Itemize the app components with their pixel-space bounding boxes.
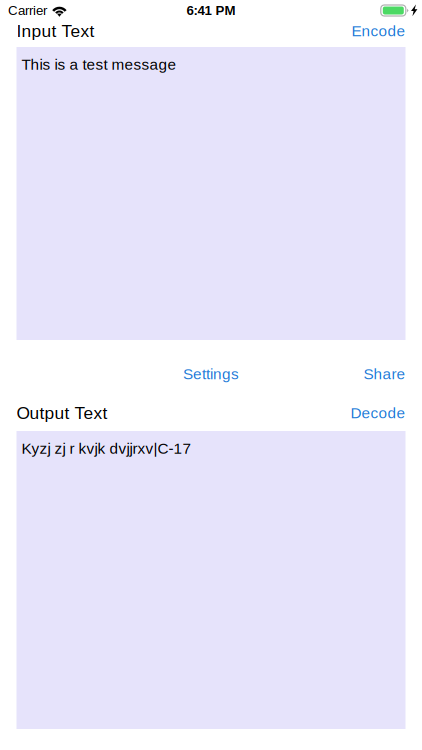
staticText: Carrier [8,3,47,18]
staticText: Input Text [16,21,94,41]
staticText: Kyzj zj r kvjk dvjjrxv|C-17 [21,440,191,457]
staticText: 6:41 PM [186,3,235,18]
staticText: Encode [351,22,405,40]
button[interactable]: Encode [351,22,405,40]
staticText: This is a test message [21,56,176,73]
button[interactable]: Share [363,365,405,383]
staticText: Output Text [16,403,107,423]
staticText: Share [363,365,405,383]
staticText: Settings [183,365,239,383]
staticText: Decode [350,404,405,422]
button[interactable]: Settings [183,365,239,383]
button[interactable]: Decode [350,404,405,422]
